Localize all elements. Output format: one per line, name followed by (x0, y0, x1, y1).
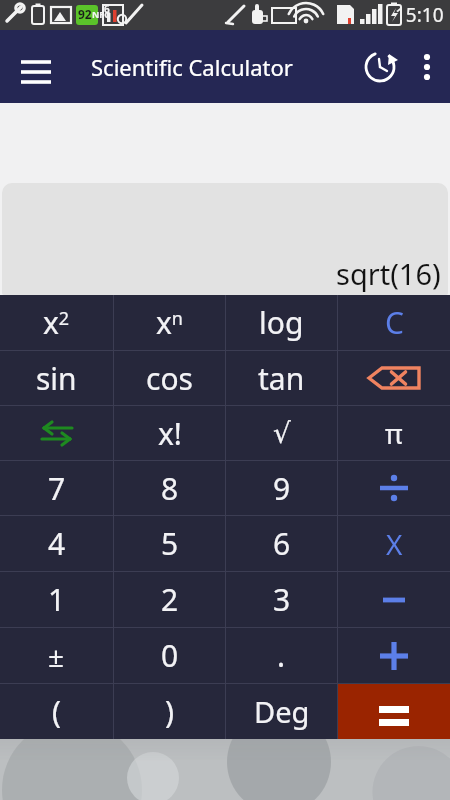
staticText: 6 (273, 523, 291, 564)
staticText: C (385, 302, 404, 343)
button[interactable]: x2 (0, 295, 113, 350)
button[interactable]: ± (0, 628, 113, 683)
staticText: 6 (104, 2, 110, 16)
button[interactable]: 1 (0, 572, 113, 627)
button[interactable]: log (226, 295, 337, 350)
button[interactable]: Open navigation drawer (10, 41, 62, 93)
staticText: 8 (161, 468, 179, 509)
button[interactable] (338, 461, 450, 515)
button[interactable]: sin (0, 351, 113, 405)
button[interactable]: 9 (226, 461, 337, 515)
button[interactable]: 3 (226, 572, 337, 627)
button[interactable]: 0 (114, 628, 225, 683)
button[interactable]: ) (114, 684, 225, 739)
button[interactable] (338, 572, 450, 627)
button[interactable]: ( (0, 684, 113, 739)
staticText: 3 (273, 579, 291, 620)
button[interactable]: 7 (0, 461, 113, 515)
button[interactable]: History (356, 43, 404, 91)
button[interactable]: 6 (226, 516, 337, 571)
staticText: sqrt(16) (336, 254, 441, 293)
button[interactable]: x! (114, 406, 225, 460)
staticText: 0 (161, 635, 179, 676)
button[interactable]: Deg (226, 684, 337, 739)
button[interactable]: xn (114, 295, 225, 350)
staticText: cos (146, 358, 193, 399)
button[interactable]: π (338, 406, 450, 460)
button[interactable] (338, 628, 450, 683)
staticText: X (386, 525, 403, 563)
staticText: √ (273, 417, 291, 450)
staticText: tan (258, 358, 305, 399)
button[interactable] (338, 684, 450, 739)
staticText: x2 (43, 302, 70, 343)
button[interactable]: √ (226, 406, 337, 460)
button[interactable]: 2 (114, 572, 225, 627)
button[interactable]: cos (114, 351, 225, 405)
staticText: π (385, 415, 403, 452)
staticText: 2 (161, 579, 179, 620)
button[interactable]: Swap (0, 406, 113, 460)
button[interactable]: 8 (114, 461, 225, 515)
staticText: 7 (48, 468, 66, 509)
staticText: log (259, 302, 304, 343)
staticText: . (277, 635, 286, 676)
staticText: 1 (48, 579, 66, 620)
staticText: ) (165, 691, 174, 732)
staticText: 15:10 (395, 2, 444, 28)
button[interactable]: X (338, 516, 450, 571)
staticText: 5 (161, 523, 179, 564)
staticText: 4 (48, 523, 66, 564)
staticText: Scientific Calculator (91, 52, 293, 82)
button[interactable]: 5 (114, 516, 225, 571)
staticText: ± (48, 637, 65, 675)
button[interactable]: . (226, 628, 337, 683)
staticText: sin (36, 358, 77, 399)
staticText: Deg (254, 692, 310, 731)
staticText: 9 (273, 468, 291, 509)
staticText: x! (158, 413, 182, 454)
staticText: xn (156, 302, 183, 343)
staticText: 92 (78, 6, 92, 22)
button[interactable]: C (338, 295, 450, 350)
staticText: ( (52, 691, 61, 732)
button[interactable]: tan (226, 351, 337, 405)
staticText: NFC (92, 8, 111, 20)
button[interactable]: 4 (0, 516, 113, 571)
button[interactable]: sqrt(16) (2, 183, 448, 295)
button[interactable]: More options (404, 44, 450, 90)
button[interactable]: Backspace (338, 351, 450, 405)
